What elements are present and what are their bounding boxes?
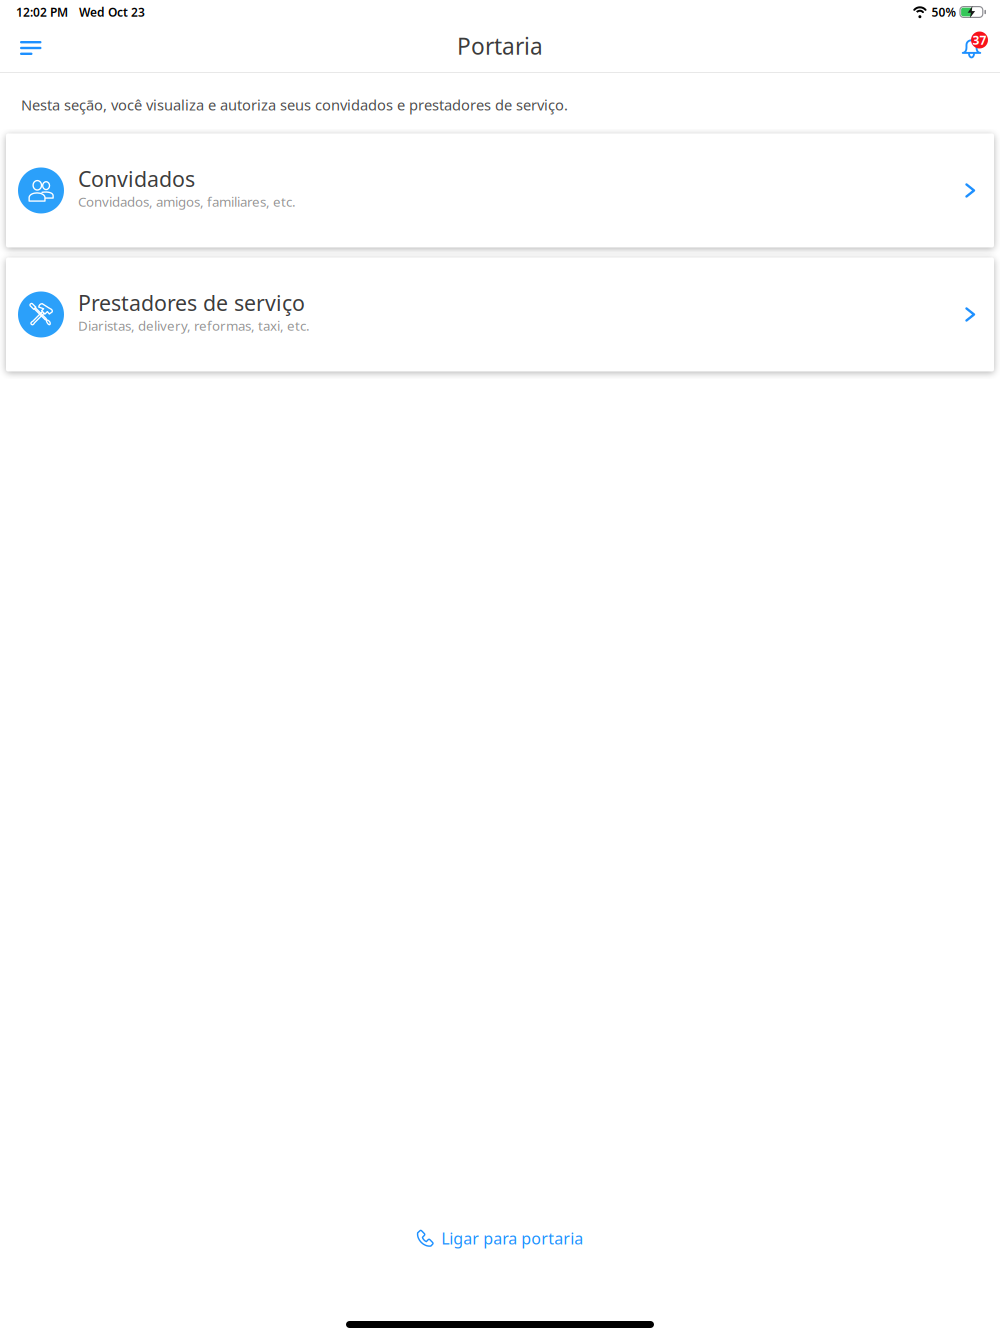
staticText: Nesta seção, você visualiza e autoriza s… bbox=[21, 95, 568, 114]
staticText: Prestadores de serviço bbox=[78, 288, 305, 317]
button[interactable]: Menu bbox=[0, 26, 60, 70]
staticText: 37 bbox=[972, 32, 986, 48]
staticText: 12:02 PM bbox=[16, 4, 68, 20]
staticText: Ligar para portaria bbox=[441, 1228, 583, 1249]
staticText: Diaristas, delivery, reformas, taxi, etc… bbox=[78, 317, 310, 334]
staticText: Convidados bbox=[78, 164, 195, 193]
staticText: 50% bbox=[931, 4, 956, 20]
staticText: Portaria bbox=[457, 31, 543, 61]
button[interactable]: Convidados bbox=[6, 133, 994, 247]
button[interactable]: Prestadores de serviço bbox=[6, 257, 994, 371]
staticText: Wed Oct 23 bbox=[79, 4, 145, 20]
button[interactable]: Notifications bbox=[952, 31, 1000, 64]
staticText: Convidados, amigos, familiares, etc. bbox=[78, 193, 296, 210]
button[interactable]: Ligar para portaria bbox=[401, 1218, 599, 1259]
